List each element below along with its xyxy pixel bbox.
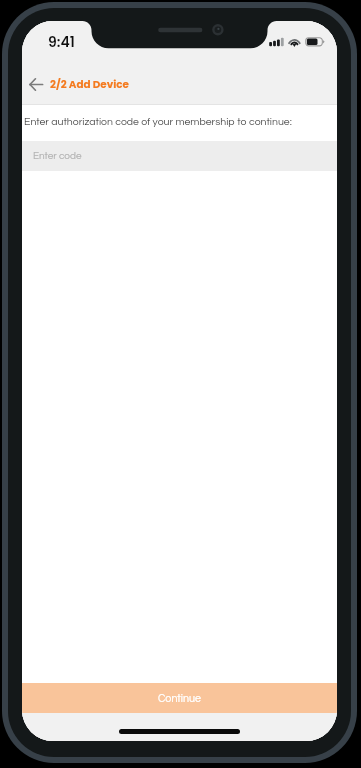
button[interactable]: Enter code — [22, 141, 337, 171]
staticText: 2/2 Add Device — [50, 77, 129, 92]
button[interactable]: Back — [23, 70, 49, 99]
staticText: 9:41 — [48, 32, 75, 52]
button[interactable]: Continue — [22, 683, 337, 713]
staticText: Enter authorization code of your members… — [24, 116, 292, 127]
staticText: Enter code — [33, 151, 82, 161]
staticText: Continue — [158, 693, 202, 704]
